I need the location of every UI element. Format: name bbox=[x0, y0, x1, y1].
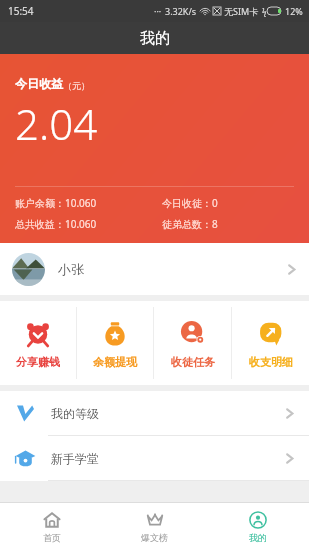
button[interactable]: 首页 bbox=[0, 503, 103, 550]
button[interactable]: 新手学堂 bbox=[0, 436, 309, 480]
button[interactable]: 小张 bbox=[0, 243, 309, 295]
staticText: 我的 bbox=[249, 532, 267, 543]
staticText: 我的 bbox=[140, 29, 170, 48]
button[interactable]: 分享赚钱 bbox=[0, 301, 76, 385]
button[interactable]: 爆文榜 bbox=[103, 503, 206, 550]
staticText: 余额提现 bbox=[93, 355, 137, 369]
staticText: 今日收徒：0 bbox=[162, 196, 218, 210]
staticText: 爆文榜 bbox=[141, 532, 168, 543]
staticText: 15:54 bbox=[8, 4, 34, 18]
button[interactable]: 我的等级 bbox=[0, 391, 309, 435]
staticText: 收徒任务 bbox=[171, 355, 215, 369]
staticText: 账户余额：10.060 bbox=[15, 196, 97, 210]
staticText: 我的等级 bbox=[51, 406, 99, 421]
staticText: 3.32K/s bbox=[165, 5, 197, 17]
button[interactable]: 收支明细 bbox=[232, 301, 309, 385]
staticText: （元） bbox=[63, 80, 90, 91]
button[interactable]: 我的 bbox=[206, 503, 309, 550]
staticText: 收支明细 bbox=[249, 355, 293, 369]
staticText: 徒弟总数：8 bbox=[162, 217, 218, 231]
button[interactable]: 余额提现 bbox=[77, 301, 153, 385]
staticText: 无SIM卡 bbox=[224, 5, 259, 17]
staticText: 总共收益：10.060 bbox=[15, 217, 97, 231]
staticText: 小张 bbox=[58, 261, 84, 277]
staticText: 12% bbox=[285, 5, 303, 17]
staticText: ··· bbox=[154, 5, 162, 17]
button[interactable]: 收徒任务 bbox=[154, 301, 231, 385]
staticText: 分享赚钱 bbox=[16, 355, 60, 369]
staticText: 新手学堂 bbox=[51, 451, 99, 466]
staticText: 首页 bbox=[43, 532, 61, 543]
staticText: 今日收益 bbox=[15, 76, 63, 91]
staticText: 2.04 bbox=[15, 95, 98, 152]
staticText: ϟ bbox=[262, 6, 267, 17]
